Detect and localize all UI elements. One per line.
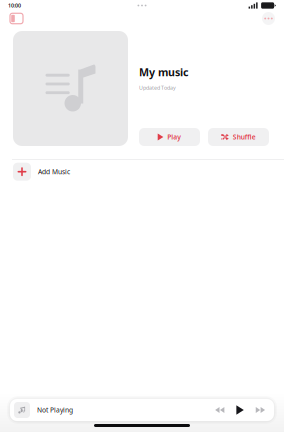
staticText: Not Playing <box>37 406 73 414</box>
button[interactable]: More options <box>260 11 277 26</box>
staticText: Shuffle <box>233 133 256 141</box>
staticText: 10:00 <box>8 2 21 9</box>
staticText: Add Music <box>38 167 70 176</box>
staticText: Play <box>167 133 181 141</box>
button[interactable]: Next track <box>252 403 269 417</box>
button[interactable]: Show sidebar <box>7 11 26 26</box>
button[interactable]: Previous track <box>211 403 228 417</box>
button[interactable]: Play <box>139 128 200 146</box>
button[interactable]: Play <box>232 402 248 418</box>
button[interactable]: Shuffle <box>208 128 269 146</box>
staticText: My music <box>139 65 189 79</box>
staticText: Updated Today <box>139 84 176 91</box>
button[interactable]: Add Music <box>0 160 284 184</box>
